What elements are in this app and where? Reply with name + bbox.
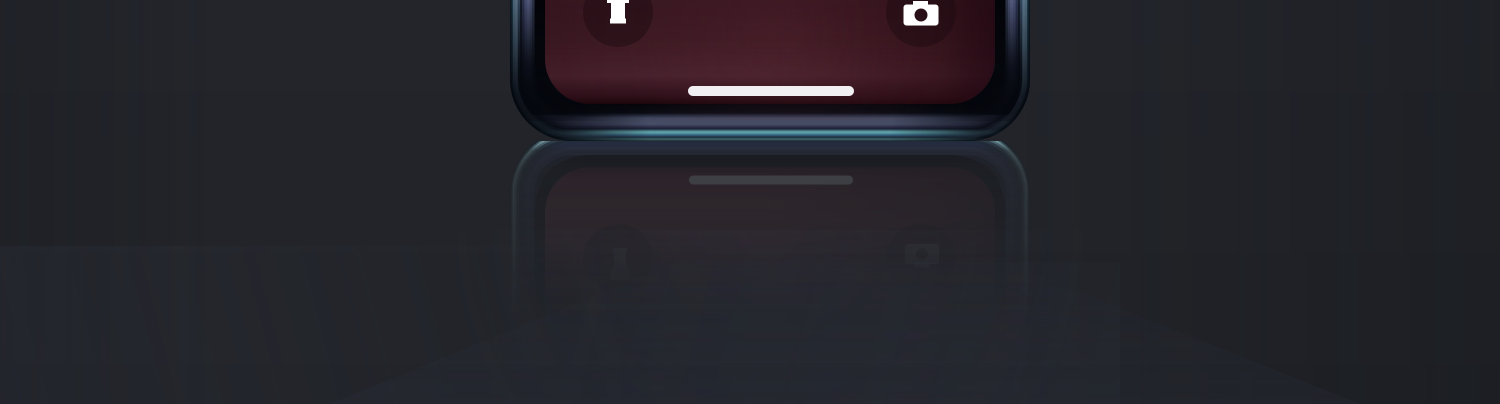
button[interactable]: Camera [886,0,956,47]
button[interactable]: Flashlight [583,0,653,47]
